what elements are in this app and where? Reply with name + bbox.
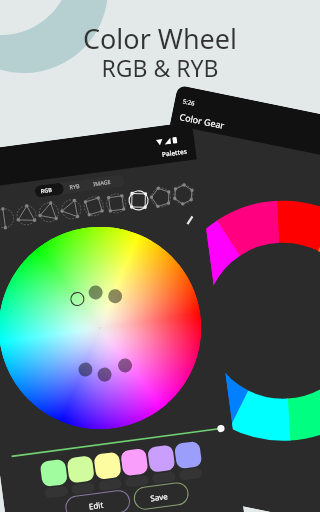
staticText: Color Gear <box>179 110 226 131</box>
staticText: IMAGE <box>93 178 112 187</box>
staticText: Color Wheel <box>0 20 320 512</box>
staticText: Save <box>150 490 169 503</box>
staticText: RGB <box>40 186 53 194</box>
staticText: RGB & RYB <box>0 52 320 512</box>
button[interactable] <box>34 182 64 198</box>
staticText: 5:26 <box>182 97 195 108</box>
staticText: RYB <box>69 182 81 190</box>
staticText: Palettes <box>161 146 188 159</box>
staticText: Edit <box>88 499 104 512</box>
